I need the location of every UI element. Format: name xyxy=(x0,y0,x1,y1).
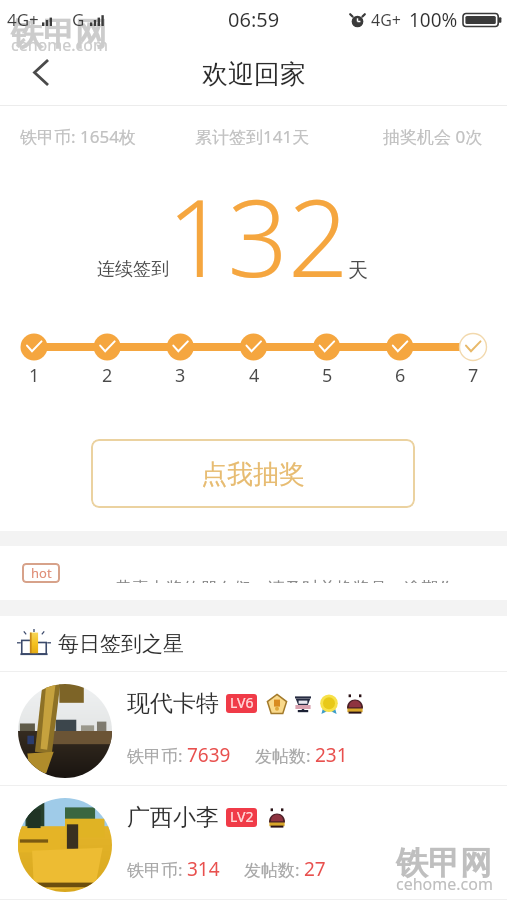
staticText: 06:59 xyxy=(228,6,280,33)
staticText: 100% xyxy=(409,7,458,33)
staticText: 铁甲币: 1654枚 xyxy=(20,125,136,148)
staticText: 铁甲网 xyxy=(11,14,107,54)
staticText: 5 xyxy=(322,363,333,388)
staticText: 1 xyxy=(29,363,40,388)
staticText: 现代卡特 xyxy=(127,689,219,718)
button[interactable]: hot xyxy=(22,563,60,583)
staticText: 恭喜中奖的朋友们，请及时兑换奖品，逾期作废。 xyxy=(115,579,455,583)
staticText: 广西小李 xyxy=(127,803,219,832)
staticText: 铁甲币: xyxy=(127,858,183,881)
staticText: 314 xyxy=(187,856,220,882)
button[interactable]: 广西小李 xyxy=(0,786,507,900)
staticText: 7639 xyxy=(187,742,231,768)
staticText: 点我抽奖 xyxy=(201,458,305,491)
staticText: LV2 xyxy=(230,808,254,826)
staticText: 抽奖机会 0次 xyxy=(383,125,483,148)
button[interactable]: 返回 xyxy=(0,40,78,106)
staticText: LV6 xyxy=(230,694,254,712)
button[interactable]: 现代卡特 xyxy=(0,672,507,786)
staticText: G xyxy=(72,8,85,31)
staticText: 4G+ xyxy=(371,9,401,31)
staticText: 铁甲网 xyxy=(396,843,492,883)
staticText: 6 xyxy=(395,363,406,388)
staticText: hot xyxy=(31,564,52,582)
staticText: 132 xyxy=(167,164,349,308)
staticText: 每日签到之星 xyxy=(58,631,184,657)
staticText: 发帖数: xyxy=(244,858,300,881)
staticText: cehome.com xyxy=(11,34,108,56)
staticText: 发帖数: xyxy=(255,744,311,767)
staticText: 27 xyxy=(304,856,326,882)
staticText: 7 xyxy=(468,363,479,388)
staticText: 天 xyxy=(348,258,368,283)
staticText: 4 xyxy=(249,363,260,388)
staticText: 4G+ xyxy=(7,8,39,31)
button[interactable]: 点我抽奖 xyxy=(91,439,415,508)
staticText: cehome.com xyxy=(396,873,493,895)
staticText: 231 xyxy=(315,742,348,768)
staticText: 累计签到141天 xyxy=(195,125,310,148)
staticText: 连续签到 xyxy=(97,258,169,281)
staticText: 欢迎回家 xyxy=(202,58,306,91)
staticText: 3 xyxy=(175,363,186,388)
staticText: 铁甲币: xyxy=(127,744,183,767)
staticText: 2 xyxy=(102,363,113,388)
